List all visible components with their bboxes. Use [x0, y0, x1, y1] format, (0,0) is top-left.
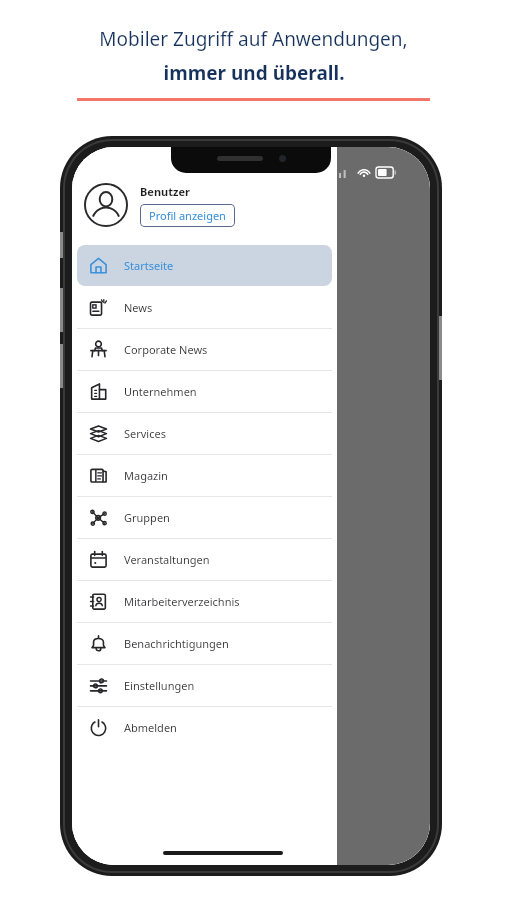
button[interactable]: Benachrichtigungen [77, 623, 332, 664]
button[interactable]: News [77, 287, 332, 328]
button[interactable]: Unternehmen [77, 371, 332, 412]
staticText: immer und überall. [163, 60, 345, 86]
button[interactable]: Gruppen [77, 497, 332, 538]
staticText: Magazin [124, 468, 168, 483]
button[interactable]: Benutzer [72, 177, 337, 235]
button[interactable]: Corporate News [77, 329, 332, 370]
staticText: Services [124, 426, 166, 441]
button[interactable]: Abmelden [77, 707, 332, 748]
staticText: Unternehmen [124, 384, 197, 399]
staticText: Mitarbeiterverzeichnis [124, 594, 240, 609]
button[interactable]: Startseite [77, 245, 332, 286]
staticText: Corporate News [124, 342, 208, 357]
staticText: Startseite [124, 258, 174, 273]
staticText: News [124, 300, 153, 315]
staticText: Benutzer [140, 184, 190, 199]
staticText: Profil anzeigen [149, 208, 226, 223]
staticText: Benachrichtigungen [124, 636, 229, 651]
button[interactable]: Services [77, 413, 332, 454]
staticText: Einstellungen [124, 678, 195, 693]
staticText: Veranstaltungen [124, 552, 210, 567]
staticText: Mobiler Zugriff auf Anwendungen, [99, 26, 408, 52]
staticText: Abmelden [124, 720, 177, 735]
button[interactable]: Magazin [77, 455, 332, 496]
button[interactable]: Veranstaltungen [77, 539, 332, 580]
button[interactable]: Profil anzeigen [140, 204, 235, 227]
staticText: Gruppen [124, 510, 170, 525]
button[interactable]: Mitarbeiterverzeichnis [77, 581, 332, 622]
button[interactable]: Einstellungen [77, 665, 332, 706]
